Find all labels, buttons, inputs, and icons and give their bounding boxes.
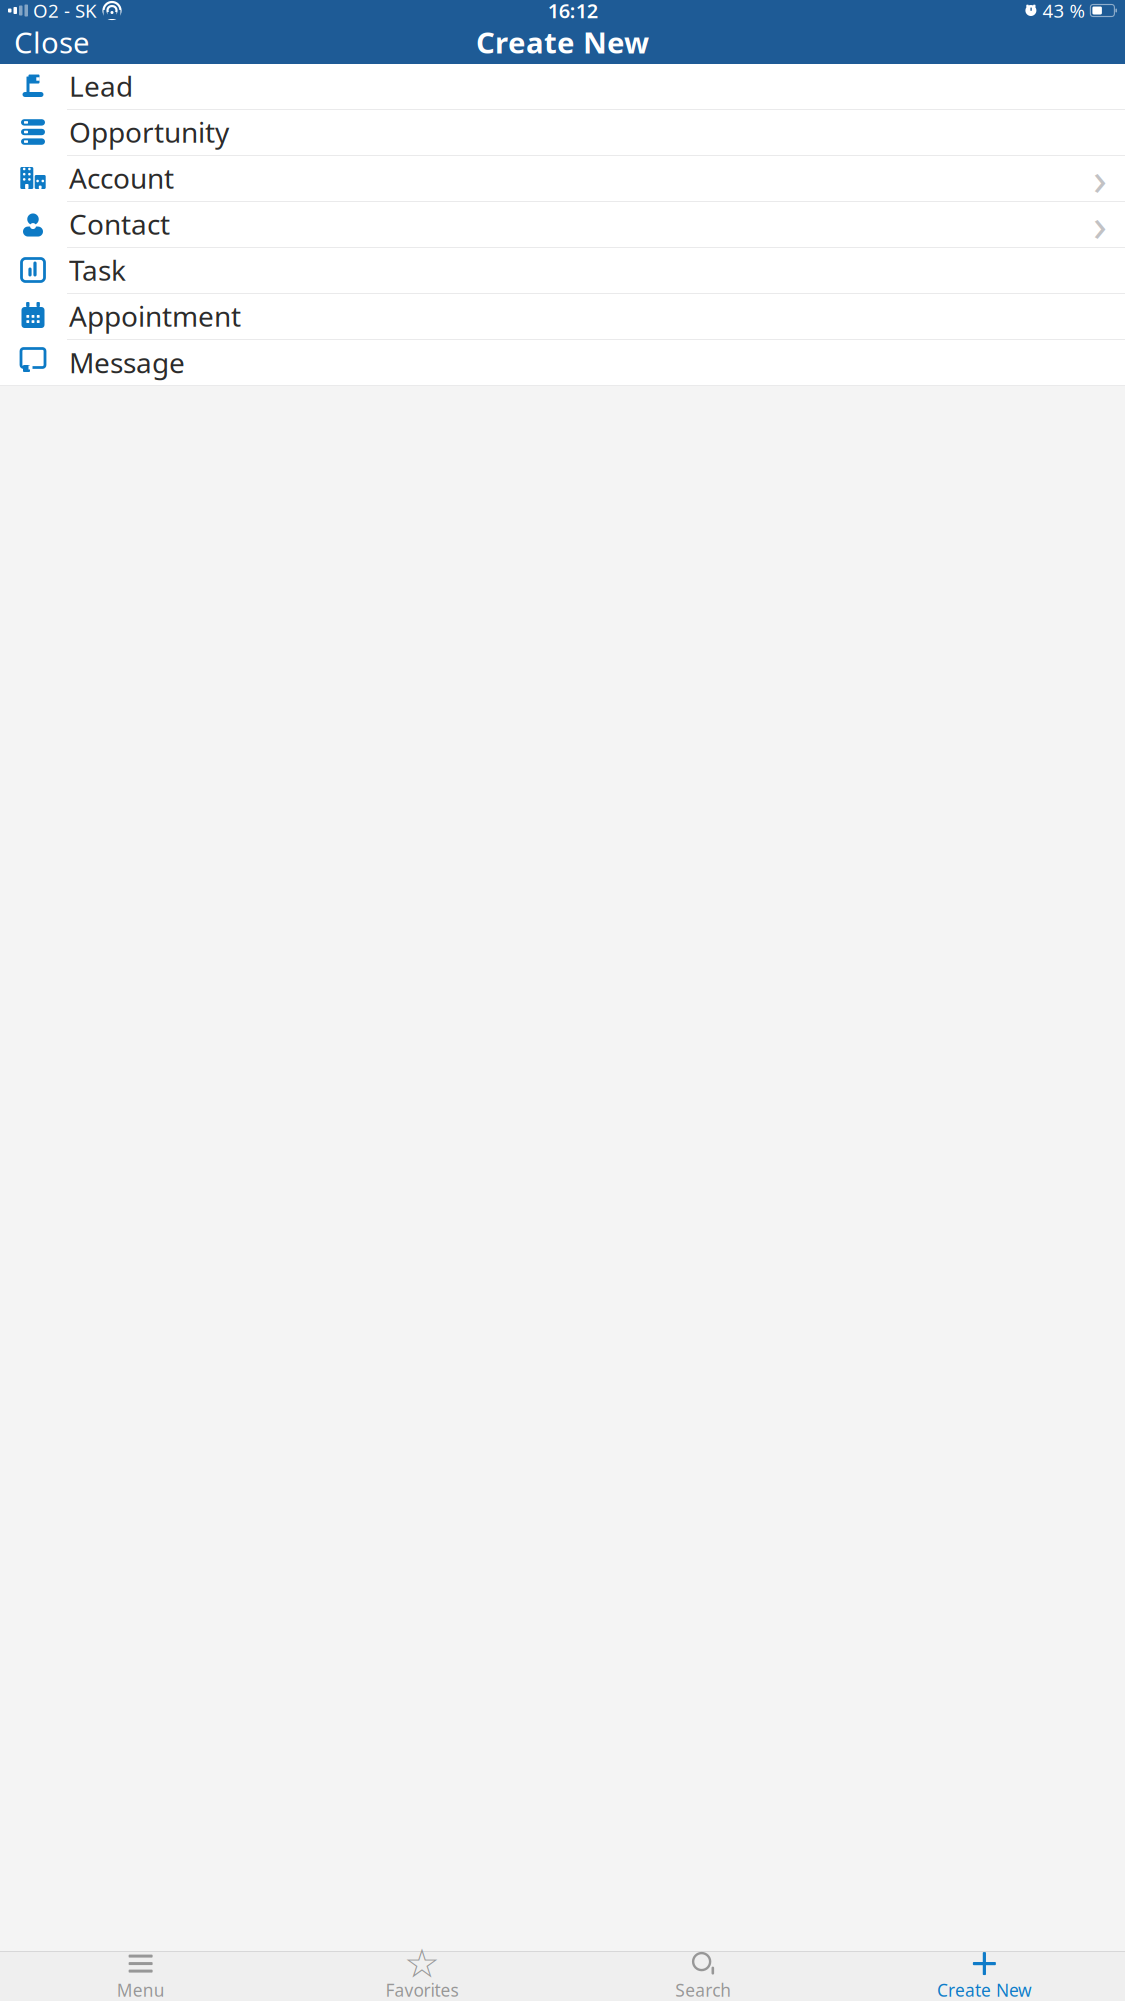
staticText: › xyxy=(1093,194,1107,254)
staticText: Search xyxy=(675,1979,731,2001)
staticText: Lead xyxy=(69,67,133,105)
button[interactable]: Contact xyxy=(0,202,1125,248)
button[interactable]: Lead xyxy=(0,64,1125,110)
staticText: Account xyxy=(69,159,174,197)
button[interactable]: Close xyxy=(0,21,104,63)
button[interactable]: Opportunity xyxy=(0,110,1125,156)
button[interactable]: ☆ xyxy=(281,1952,562,2001)
staticText: Contact xyxy=(69,205,170,243)
staticText: O2 - SK xyxy=(33,0,97,23)
button[interactable]: Account xyxy=(0,156,1125,202)
button[interactable]: Search xyxy=(562,1952,844,2001)
staticText: Create New xyxy=(476,22,649,61)
staticText: Favorites xyxy=(385,1979,458,2001)
staticText: Message xyxy=(69,344,185,381)
button[interactable]: Menu xyxy=(0,1952,281,2001)
staticText: › xyxy=(1093,148,1107,208)
staticText: Close xyxy=(14,22,90,61)
staticText: Opportunity xyxy=(69,113,229,151)
button[interactable]: Appointment xyxy=(0,294,1125,340)
staticText: Menu xyxy=(117,1979,165,2001)
staticText: Appointment xyxy=(69,297,241,335)
staticText: Create New xyxy=(937,1979,1032,2001)
staticText: 16:12 xyxy=(548,0,598,24)
button[interactable]: Create New xyxy=(844,1952,1125,2001)
staticText: Task xyxy=(69,251,126,289)
button[interactable]: Task xyxy=(0,248,1125,294)
staticText: 43 % xyxy=(1042,0,1085,23)
staticText: ☆ xyxy=(404,1941,440,1986)
button[interactable]: Message xyxy=(0,340,1125,386)
